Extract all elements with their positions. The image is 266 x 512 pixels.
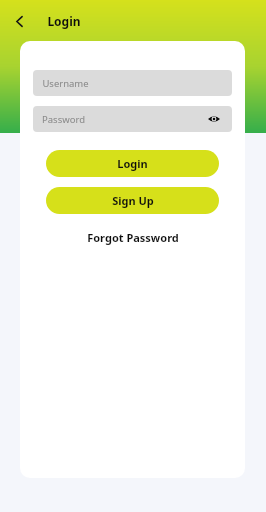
button[interactable]: Username bbox=[33, 70, 232, 96]
staticText: Forgot Password bbox=[87, 230, 179, 245]
staticText: Sign Up bbox=[112, 193, 154, 208]
button[interactable]: Forgot Password bbox=[33, 228, 232, 246]
button[interactable]: Back bbox=[5, 7, 33, 35]
staticText: Login bbox=[117, 156, 148, 171]
staticText: Password bbox=[42, 113, 85, 126]
button[interactable]: Login bbox=[46, 150, 219, 177]
button[interactable]: Sign Up bbox=[46, 187, 219, 214]
staticText: Login bbox=[47, 13, 81, 29]
button[interactable]: Password bbox=[33, 106, 232, 132]
button[interactable]: Show password bbox=[205, 110, 223, 128]
staticText: Username bbox=[42, 77, 89, 90]
